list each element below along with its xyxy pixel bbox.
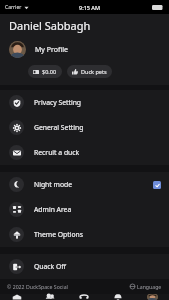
button[interactable]: Theme Options <box>0 222 169 247</box>
button[interactable]: Notifications <box>101 294 135 300</box>
staticText: Recruit a duck <box>34 148 80 157</box>
staticText: Duck pets <box>81 68 107 75</box>
staticText: Quack Off <box>34 262 66 271</box>
button[interactable]: Profile <box>135 294 169 300</box>
button[interactable]: Privacy Setting <box>0 90 169 115</box>
staticText: Daniel Sabbagh <box>9 18 91 33</box>
button[interactable]: Language <box>130 283 162 290</box>
button[interactable]: Recruit a duck <box>0 140 169 165</box>
button[interactable]: Night mode toggle <box>153 181 161 189</box>
staticText: Admin Area <box>34 205 72 214</box>
button[interactable]: My Profile <box>0 39 169 60</box>
button[interactable]: General Setting <box>0 115 169 140</box>
staticText: General Setting <box>34 123 84 132</box>
staticText: My Profile <box>35 45 68 55</box>
staticText: Privacy Setting <box>34 98 82 107</box>
staticText: 9:15 AM <box>79 4 101 11</box>
button[interactable]: Home <box>0 294 33 300</box>
button[interactable]: Admin Area <box>0 197 169 222</box>
staticText: Language <box>137 283 162 290</box>
button[interactable]: Night mode <box>0 172 169 197</box>
staticText: © 2022 DuckSpace Social <box>7 283 68 290</box>
staticText: $0.00 <box>42 68 57 75</box>
button[interactable]: Duck pets <box>67 65 112 78</box>
button[interactable]: Friends <box>33 294 67 300</box>
button[interactable]: Messages <box>67 294 101 300</box>
button[interactable]: $0.00 <box>28 65 62 78</box>
staticText: Night mode <box>34 180 73 189</box>
button[interactable]: Quack Off <box>0 254 169 279</box>
staticText: Carrier <box>5 4 22 11</box>
staticText: Theme Options <box>34 230 84 239</box>
